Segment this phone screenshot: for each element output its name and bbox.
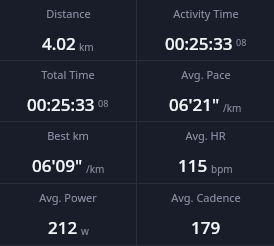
staticText: w [81, 224, 89, 238]
button[interactable]: Avg. Cadence [137, 184, 274, 245]
staticText: 06'09" [32, 154, 83, 177]
staticText: 115 [178, 154, 208, 177]
button[interactable]: Avg. HR [137, 122, 274, 183]
staticText: 00:25:33 [27, 93, 95, 116]
button[interactable]: Avg. Power [0, 184, 136, 245]
staticText: 08 [98, 97, 109, 109]
staticText: 4.02 [42, 32, 76, 55]
button[interactable]: Best km [0, 122, 136, 183]
staticText: /km [223, 101, 242, 115]
staticText: Avg. Pace [181, 67, 231, 82]
staticText: 212 [48, 216, 78, 239]
staticText: Best km [47, 128, 89, 143]
staticText: 00:25:33 [165, 32, 233, 55]
staticText: Total Time [41, 67, 95, 82]
button[interactable]: Activity Time [137, 0, 274, 60]
button[interactable]: Distance [0, 0, 136, 60]
staticText: km [79, 40, 94, 54]
staticText: 06'21" [169, 93, 220, 116]
staticText: /km [86, 162, 105, 176]
button[interactable]: Total Time [0, 61, 136, 121]
staticText: Avg. Cadence [171, 190, 241, 205]
staticText: 179 [191, 216, 221, 239]
staticText: Activity Time [173, 6, 239, 21]
staticText: Avg. HR [185, 128, 226, 143]
button[interactable]: Avg. Pace [137, 61, 274, 121]
staticText: bpm [211, 162, 233, 176]
staticText: 08 [236, 36, 247, 48]
staticText: Avg. Power [39, 190, 97, 205]
staticText: Distance [46, 6, 91, 21]
